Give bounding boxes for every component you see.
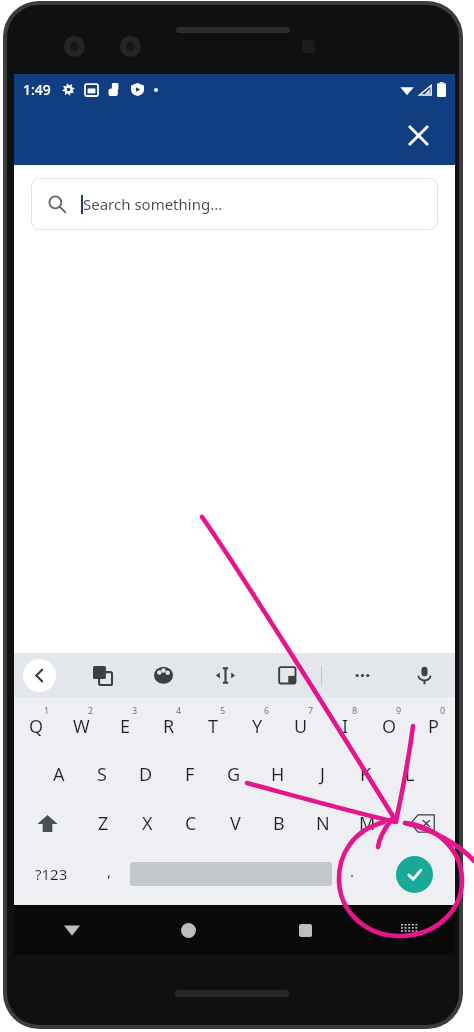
staticText: 5 (220, 704, 226, 716)
staticText: 3 (132, 704, 138, 716)
staticText: D (139, 762, 153, 787)
button[interactable]: Shift (14, 799, 81, 848)
button[interactable]: 2 (59, 697, 103, 750)
staticText: I (342, 714, 349, 739)
staticText: C (185, 811, 197, 836)
button[interactable]: 0 (411, 697, 455, 750)
button[interactable]: Themes (148, 660, 178, 690)
staticText: 7 (308, 704, 314, 716)
button[interactable]: 4 (147, 697, 191, 750)
button[interactable]: K (344, 750, 388, 799)
button[interactable]: 3 (103, 697, 147, 750)
staticText: H (271, 762, 285, 787)
button[interactable]: 5 (191, 697, 235, 750)
staticText: 9 (396, 704, 402, 716)
staticText: F (185, 762, 195, 787)
button[interactable]: F (168, 750, 212, 799)
staticText: 1 (44, 704, 50, 716)
button[interactable]: C (169, 799, 213, 848)
staticText: 4 (176, 704, 182, 716)
button[interactable]: 9 (367, 697, 411, 750)
staticText: V (230, 811, 241, 836)
button[interactable]: N (301, 799, 345, 848)
staticText: A (53, 762, 65, 787)
staticText: . (350, 861, 355, 881)
staticText: R (163, 714, 175, 739)
button[interactable]: G (212, 750, 256, 799)
staticText: ?123 (35, 864, 68, 884)
staticText: O (382, 714, 397, 739)
button[interactable]: J (300, 750, 344, 799)
button[interactable]: Clipboard (272, 660, 302, 690)
staticText: , (107, 861, 112, 881)
button[interactable]: ?123 (14, 848, 89, 900)
staticText: X (142, 811, 153, 836)
button[interactable]: Z (81, 799, 125, 848)
staticText: U (294, 714, 308, 739)
button[interactable]: L (388, 750, 432, 799)
button[interactable]: Back (23, 659, 56, 692)
staticText: Q (29, 714, 44, 739)
staticText: J (320, 762, 325, 787)
staticText: N (316, 811, 330, 836)
staticText: 8 (352, 704, 358, 716)
staticText: G (227, 762, 241, 787)
button[interactable]: Search something… (31, 178, 438, 230)
staticText: K (360, 762, 372, 787)
staticText: E (120, 714, 131, 739)
button[interactable]: Backspace (389, 799, 455, 848)
staticText: Search something… (83, 194, 223, 214)
button[interactable]: Recent apps (247, 905, 364, 955)
button[interactable]: Change keyboard (364, 905, 455, 955)
button[interactable]: . (332, 848, 373, 900)
staticText: B (273, 811, 285, 836)
staticText: 0 (440, 704, 446, 716)
button[interactable]: More options (347, 660, 377, 690)
button[interactable]: Home (130, 905, 247, 955)
staticText: M (359, 811, 376, 836)
button[interactable]: Close (397, 114, 439, 156)
button[interactable]: 7 (279, 697, 323, 750)
staticText: W (73, 714, 90, 739)
staticText: S (97, 762, 107, 787)
staticText: Y (252, 714, 263, 739)
button[interactable]: , (89, 848, 130, 900)
button[interactable]: Voice input (409, 660, 439, 690)
staticText: P (428, 714, 439, 739)
button[interactable]: 6 (235, 697, 279, 750)
button[interactable]: X (125, 799, 169, 848)
button[interactable]: Text editing (210, 660, 240, 690)
button[interactable]: Back (14, 905, 130, 955)
button[interactable]: 1 (14, 697, 59, 750)
staticText: T (208, 714, 219, 739)
button[interactable]: B (257, 799, 301, 848)
staticText: Z (98, 811, 109, 836)
button[interactable]: Enter (396, 856, 433, 893)
button[interactable]: Translate (87, 660, 117, 690)
staticText: 2 (88, 704, 94, 716)
staticText: 6 (264, 704, 270, 716)
staticText: L (405, 762, 415, 787)
button[interactable]: H (256, 750, 300, 799)
button[interactable]: 8 (323, 697, 367, 750)
staticText: 1:49 (23, 80, 51, 99)
button[interactable]: M (345, 799, 389, 848)
button[interactable]: V (213, 799, 257, 848)
button[interactable]: S (80, 750, 124, 799)
button[interactable]: D (124, 750, 168, 799)
button[interactable]: A (37, 750, 80, 799)
